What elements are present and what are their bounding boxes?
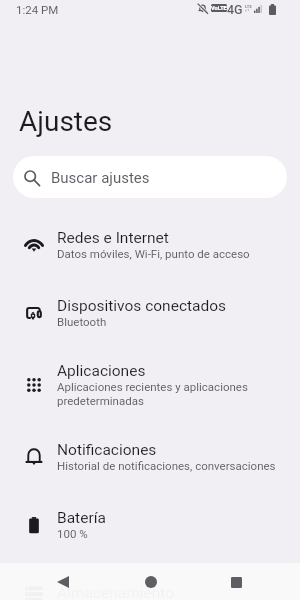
staticText: Ajustes	[19, 106, 113, 138]
staticText: Buscar ajustes	[51, 168, 150, 187]
staticText: Redes e Internet	[57, 227, 169, 247]
staticText: Bluetooth	[57, 315, 107, 329]
button[interactable]: Batería	[0, 490, 300, 558]
staticText: Notificaciones	[57, 439, 157, 459]
staticText: Batería	[57, 507, 106, 527]
staticText: Historial de notificaciones, conversacio…	[57, 459, 276, 473]
staticText: 100 %	[57, 527, 88, 541]
staticText: Almacenamiento	[57, 582, 175, 600]
other: Notifications silenced	[197, 3, 208, 14]
staticText: Dispositivos conectados	[57, 295, 227, 315]
staticText: LTE	[245, 4, 252, 9]
button[interactable]: Home	[134, 565, 168, 599]
staticText: 1:24 PM	[16, 2, 59, 17]
staticText: Datos móviles, Wi-Fi, punto de acceso	[57, 247, 250, 261]
button[interactable]: Almacenamiento	[0, 558, 300, 600]
staticText: Aplicaciones	[57, 360, 146, 380]
staticText: 4G	[227, 1, 243, 17]
button[interactable]: Recent apps	[219, 565, 253, 599]
button[interactable]: Dispositivos conectados	[0, 278, 300, 346]
button[interactable]: Back	[46, 565, 80, 599]
staticText: Aplicaciones recientes y aplicaciones pr…	[57, 380, 278, 408]
staticText: VoLTE	[211, 5, 227, 11]
button[interactable]: Aplicaciones	[0, 346, 300, 422]
button[interactable]: Redes e Internet	[0, 210, 300, 278]
button[interactable]: Buscar ajustes	[13, 156, 287, 198]
button[interactable]: Notificaciones	[0, 422, 300, 490]
